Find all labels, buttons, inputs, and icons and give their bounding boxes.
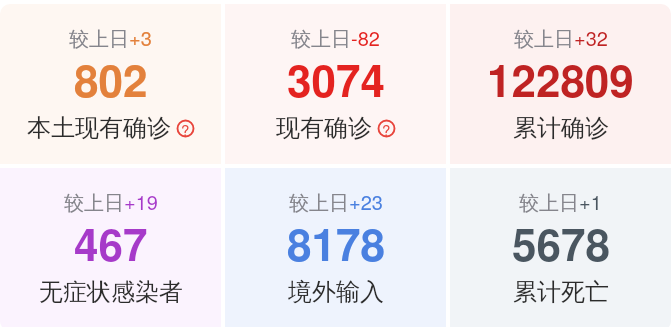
staticText: 较上日+19 [64,187,158,216]
staticText: 累计死亡 [513,277,609,307]
staticText: 467 [74,211,148,274]
staticText: 累计确诊 [513,113,609,143]
button[interactable]: 说明 [377,119,396,138]
staticText: 境外输入 [288,277,384,307]
staticText: 较上日+1 [519,187,602,216]
button[interactable]: 较上日+32 [450,4,671,164]
staticText: ? [382,119,391,138]
staticText: 无症状感染者 [39,277,183,307]
button[interactable]: 说明 [176,119,195,138]
staticText: 122809 [487,47,634,110]
button[interactable]: 较上日+19 [0,168,221,327]
staticText: 较上日-82 [291,23,380,52]
button[interactable]: 较上日+1 [450,168,671,327]
staticText: ? [181,119,190,138]
staticText: 较上日+23 [289,187,383,216]
staticText: 802 [74,47,148,110]
staticText: 现有确诊 [276,113,372,143]
button[interactable]: 较上日+23 [225,168,446,327]
staticText: 8178 [287,211,385,274]
staticText: 3074 [287,47,385,110]
staticText: 本土现有确诊 [27,113,171,143]
staticText: 较上日+3 [69,23,152,52]
staticText: 较上日+32 [514,23,608,52]
button[interactable]: 较上日-82 [225,4,446,164]
staticText: 5678 [512,211,610,274]
button[interactable]: 较上日+3 [0,4,221,164]
